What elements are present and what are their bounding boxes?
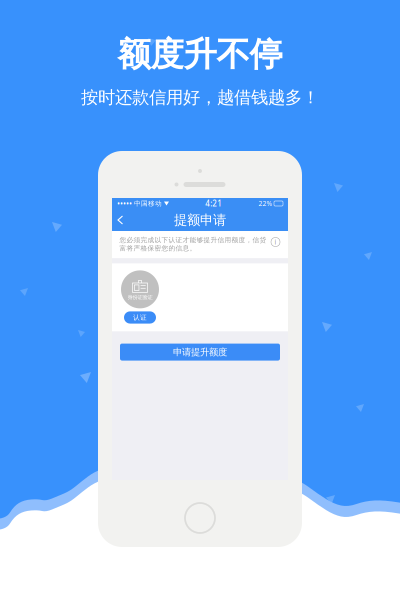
staticText: 提额申请	[174, 212, 226, 228]
staticText: •••••	[117, 198, 132, 209]
staticText: 额度升不停	[117, 34, 282, 75]
staticText: 4:21	[205, 198, 222, 209]
button[interactable]: 申请提升额度	[112, 344, 288, 361]
staticText: 申请提升额度	[173, 346, 227, 358]
staticText: 身份证验证	[127, 294, 152, 300]
staticText: i	[274, 238, 276, 246]
staticText: 中国移动	[132, 199, 164, 208]
staticText: 您必须完成以下认证才能够提升信用额度，信贷富将严格保密您的信息。	[119, 236, 266, 252]
button[interactable]: 返回	[112, 210, 128, 230]
staticText: 按时还款信用好，越借钱越多！	[81, 87, 319, 108]
button[interactable]: 说明	[269, 236, 281, 248]
staticText: 22%	[258, 199, 272, 208]
button[interactable]: 认证	[124, 311, 156, 324]
staticText: 认证	[133, 313, 147, 322]
